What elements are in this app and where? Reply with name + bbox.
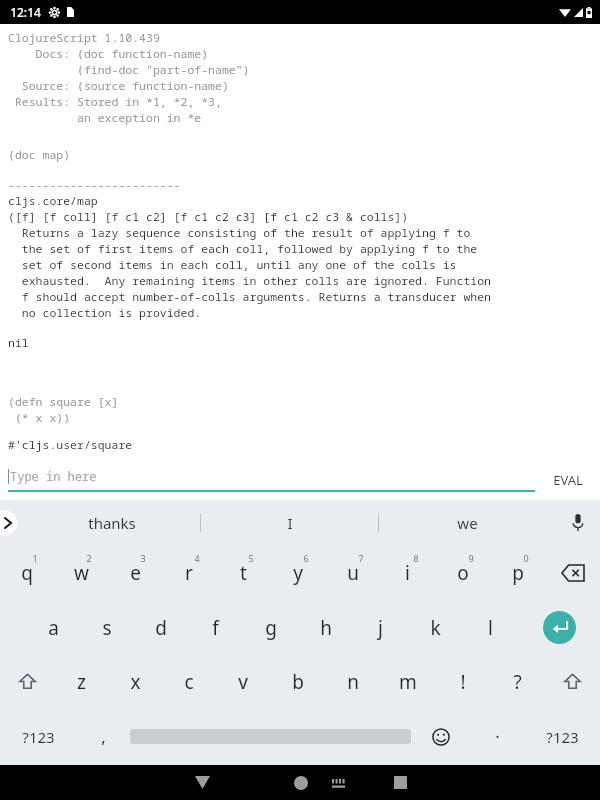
button[interactable]: Shift [545, 655, 600, 708]
button[interactable]: Voice input [556, 500, 600, 545]
staticText: o [457, 560, 469, 586]
staticText: ([f] [f coll] [f c1 c2] [f c1 c2 c3] [f … [8, 209, 409, 225]
button[interactable]: u [325, 545, 380, 600]
button[interactable]: More suggestions [0, 510, 17, 536]
button[interactable]: i [380, 545, 435, 600]
button[interactable]: Shift [0, 655, 54, 708]
staticText: ------------------------- [8, 177, 181, 193]
staticText: I [287, 513, 293, 533]
staticText: nil [8, 335, 29, 351]
staticText: Docs: (doc function-name) [8, 46, 209, 62]
staticText: a [48, 615, 59, 641]
staticText: y [293, 560, 303, 586]
button[interactable]: ! [435, 655, 490, 708]
button[interactable]: ?123 [524, 708, 600, 765]
button[interactable]: s [80, 600, 134, 655]
staticText: q [21, 560, 33, 586]
staticText: an exception in *e [8, 110, 202, 126]
staticText: Results: Stored in *1, *2, *3, [8, 94, 222, 110]
button[interactable]: m [380, 655, 435, 708]
staticText: f should accept number-of-colls argument… [8, 289, 491, 305]
staticText: r [185, 560, 193, 586]
button[interactable]: Enter [518, 600, 600, 655]
button[interactable]: h [298, 600, 353, 655]
staticText: z [77, 669, 86, 695]
staticText: f [212, 615, 219, 641]
staticText: #'cljs.user/square [8, 437, 133, 453]
staticText: exhausted. Any remaining items in other … [8, 273, 491, 289]
button[interactable]: thanks [24, 500, 200, 545]
staticText: p [512, 560, 524, 586]
button[interactable]: Back [184, 765, 220, 800]
staticText: (* x x)) [8, 410, 71, 426]
button[interactable]: b [270, 655, 325, 708]
staticText: ClojureScript 1.10.439 [8, 30, 160, 46]
button[interactable]: y [270, 545, 325, 600]
staticText: cljs.core/map [8, 193, 98, 209]
button[interactable]: · [470, 708, 524, 765]
button[interactable]: x [108, 655, 162, 708]
button[interactable]: Home [283, 765, 319, 800]
button[interactable]: z [54, 655, 108, 708]
staticText: g [265, 615, 277, 641]
button[interactable]: Space [130, 724, 411, 749]
staticText: k [430, 615, 441, 641]
staticText: , [101, 725, 106, 748]
button[interactable]: , [76, 708, 130, 765]
staticText: Returns a lazy sequence consisting of th… [8, 225, 471, 241]
staticText: the set of first items of each coll, fol… [8, 241, 478, 257]
staticText: · [495, 725, 500, 748]
staticText: j [378, 615, 383, 641]
button[interactable]: l [463, 600, 518, 655]
staticText: ?123 [546, 727, 579, 747]
staticText: l [488, 615, 493, 641]
staticText: i [405, 560, 410, 586]
button[interactable]: v [216, 655, 270, 708]
staticText: u [347, 560, 359, 586]
button[interactable]: j [353, 600, 408, 655]
button[interactable]: r [162, 545, 216, 600]
button[interactable]: EVAL [535, 460, 600, 500]
staticText: 7 [358, 552, 364, 564]
button[interactable]: a [26, 600, 80, 655]
button[interactable]: g [243, 600, 298, 655]
staticText: (find-doc "part-of-name") [8, 62, 250, 78]
button[interactable]: t [216, 545, 270, 600]
staticText: ! [460, 669, 466, 695]
button[interactable]: o [435, 545, 490, 600]
staticText: 9 [468, 552, 474, 564]
button[interactable]: w [54, 545, 108, 600]
button[interactable]: e [108, 545, 162, 600]
button[interactable]: ? [490, 655, 545, 708]
button[interactable]: n [325, 655, 380, 708]
staticText: e [130, 560, 141, 586]
staticText: 12:14 [10, 4, 41, 20]
staticText: 3 [140, 552, 146, 564]
button[interactable]: q [0, 545, 54, 600]
button[interactable]: Recent apps [382, 765, 418, 800]
staticText: (defn square [x] [8, 394, 119, 410]
staticText: no collection is provided. [8, 305, 202, 321]
button[interactable]: we [379, 500, 556, 545]
button[interactable]: k [408, 600, 463, 655]
staticText: 0 [523, 552, 529, 564]
button[interactable]: Type in here [8, 468, 535, 492]
staticText: v [238, 669, 248, 695]
button[interactable]: Emoji [411, 708, 470, 765]
staticText: 6 [303, 552, 309, 564]
button[interactable]: I [201, 500, 378, 545]
staticText: 1 [32, 552, 38, 564]
staticText: 8 [413, 552, 419, 564]
staticText: ?123 [22, 727, 55, 747]
button[interactable]: p [490, 545, 545, 600]
button[interactable]: d [134, 600, 188, 655]
button[interactable]: Backspace [545, 545, 600, 600]
staticText: set of second items in each coll, until … [8, 257, 457, 273]
button[interactable]: ?123 [0, 708, 76, 765]
button[interactable]: c [162, 655, 216, 708]
button[interactable]: f [188, 600, 243, 655]
staticText: s [102, 615, 112, 641]
staticText: Source: (source function-name) [8, 78, 229, 94]
staticText: m [399, 669, 417, 695]
staticText: n [347, 669, 359, 695]
